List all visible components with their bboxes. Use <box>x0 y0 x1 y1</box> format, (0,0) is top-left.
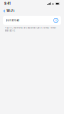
staticText: Public networks are automatically joined… <box>5 26 56 32</box>
staticText: Wi-Fi <box>7 9 15 13</box>
staticText: i <box>55 19 56 22</box>
button[interactable]: Wi-Fi <box>0 7 18 14</box>
staticText: 9:41 <box>4 2 10 5</box>
staticText: Bunstroad <box>6 19 20 22</box>
button[interactable]: Bunstroad <box>3 16 61 25</box>
